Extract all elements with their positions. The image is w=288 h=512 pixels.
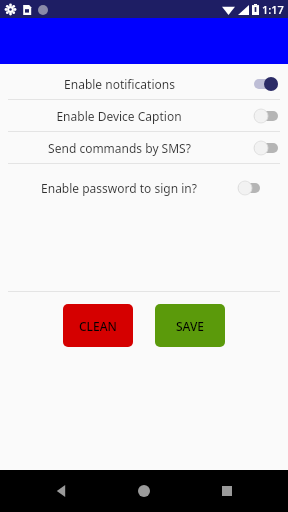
staticText: Send commands by SMS? (48, 140, 191, 156)
button[interactable]: Enable Device Caption (0, 100, 288, 131)
staticText: Enable password to sign in? (41, 180, 197, 196)
button[interactable]: Recents (205, 470, 249, 512)
staticText: 1:17 (262, 2, 284, 17)
button[interactable]: Enable notifications (0, 68, 288, 99)
button[interactable]: Enable password to sign in? (0, 172, 288, 203)
staticText: CLEAN (79, 318, 117, 334)
staticText: Enable Device Caption (56, 108, 182, 124)
staticText: SAVE (176, 318, 205, 334)
staticText: Enable notifications (64, 76, 175, 92)
button[interactable]: SAVE (155, 304, 225, 347)
button[interactable]: Back (39, 470, 83, 512)
button[interactable]: Home (122, 470, 166, 512)
button[interactable]: CLEAN (63, 304, 133, 347)
button[interactable]: Send commands by SMS? (0, 132, 288, 163)
